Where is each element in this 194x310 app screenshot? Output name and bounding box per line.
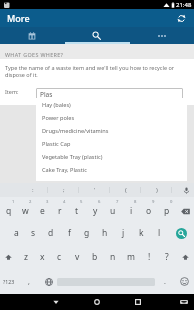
- button[interactable]: Home: [89, 294, 105, 310]
- staticText: r: [58, 205, 62, 217]
- staticText: o: [146, 205, 152, 217]
- button[interactable]: m: [122, 245, 140, 269]
- staticText: ': [94, 186, 96, 194]
- staticText: 3: [46, 199, 49, 205]
- staticText: s: [31, 227, 36, 239]
- staticText: ;: [63, 186, 65, 194]
- button[interactable]: k: [132, 221, 150, 245]
- staticText: z: [24, 251, 28, 263]
- button[interactable]: 9: [140, 197, 158, 221]
- staticText: 4: [63, 199, 66, 205]
- button[interactable]: Hay (bales): [36, 98, 187, 111]
- button[interactable]: Calendar: [0, 27, 64, 44]
- staticText: Plas: [40, 90, 53, 99]
- button[interactable]: c: [51, 245, 68, 269]
- button[interactable]: Search: [168, 221, 194, 245]
- staticText: 6: [98, 199, 101, 205]
- button[interactable]: Power poles: [36, 111, 187, 124]
- button[interactable]: 6: [86, 197, 104, 221]
- staticText: 7: [116, 199, 119, 205]
- staticText: 21:48: [176, 1, 192, 9]
- button[interactable]: g: [78, 221, 96, 245]
- button[interactable]: Change language: [40, 269, 57, 294]
- button[interactable]: d: [42, 221, 60, 245]
- button[interactable]: 0: [158, 197, 176, 221]
- button[interactable]: h: [96, 221, 114, 245]
- button[interactable]: f: [60, 221, 78, 245]
- button[interactable]: 5: [68, 197, 86, 221]
- button[interactable]: Back: [48, 294, 64, 310]
- button[interactable]: .: [155, 269, 175, 294]
- staticText: x: [40, 251, 45, 263]
- staticText: Cake Tray, Plastic: [42, 166, 87, 174]
- button[interactable]: ): [141, 183, 172, 197]
- button[interactable]: Recent apps: [130, 294, 146, 310]
- button[interactable]: Refresh: [173, 10, 189, 26]
- staticText: 1: [12, 199, 15, 205]
- staticText: l: [158, 227, 161, 239]
- button[interactable]: 8: [122, 197, 140, 221]
- button[interactable]: ?123: [0, 269, 18, 294]
- staticText: Type the name of a waste item and we'll …: [5, 64, 175, 78]
- button[interactable]: Drugs/medicine/vitamins: [36, 124, 187, 137]
- button[interactable]: !: [140, 245, 158, 269]
- staticText: Vegetable Tray (plastic): [42, 153, 103, 161]
- button[interactable]: Vegetable Tray (plastic): [36, 150, 187, 163]
- button[interactable]: x: [34, 245, 51, 269]
- staticText: m: [127, 251, 135, 263]
- button[interactable]: Cake Tray, Plastic: [36, 163, 187, 176]
- staticText: v: [75, 251, 80, 263]
- button[interactable]: Search: [64, 27, 129, 44]
- staticText: p: [164, 205, 170, 217]
- staticText: w: [22, 205, 29, 217]
- staticText: More: [7, 12, 30, 24]
- button[interactable]: 7: [104, 197, 122, 221]
- button[interactable]: Emoji: [175, 269, 194, 294]
- staticText: 5: [80, 199, 83, 205]
- button[interactable]: ;: [48, 183, 79, 197]
- button[interactable]: a: [8, 221, 25, 245]
- staticText: t: [75, 205, 79, 217]
- button[interactable]: ': [79, 183, 110, 197]
- button[interactable]: :: [17, 183, 48, 197]
- button[interactable]: s: [25, 221, 42, 245]
- button[interactable]: Plastic Cap: [36, 137, 187, 150]
- staticText: Power poles: [42, 114, 75, 122]
- button[interactable]: ?: [158, 245, 176, 269]
- staticText: ,: [28, 277, 30, 287]
- staticText: ?123: [3, 278, 15, 285]
- button[interactable]: v: [68, 245, 86, 269]
- button[interactable]: Switch keyboard: [177, 295, 191, 309]
- button[interactable]: 2: [17, 197, 34, 221]
- staticText: b: [92, 251, 98, 263]
- staticText: a: [14, 227, 19, 239]
- button[interactable]: 1: [0, 197, 17, 221]
- button[interactable]: z: [17, 245, 34, 269]
- button[interactable]: 3: [34, 197, 51, 221]
- staticText: k: [139, 227, 144, 239]
- staticText: WHAT GOES WHERE?: [5, 51, 64, 58]
- staticText: Item:: [5, 88, 19, 95]
- staticText: !: [148, 251, 151, 263]
- button[interactable]: ,: [18, 269, 40, 294]
- staticText: .: [164, 277, 166, 287]
- button[interactable]: Plas: [36, 88, 183, 101]
- staticText: 9: [152, 199, 155, 205]
- button[interactable]: n: [104, 245, 122, 269]
- button[interactable]: Voice input: [181, 185, 192, 196]
- button[interactable]: 4: [51, 197, 68, 221]
- button[interactable]: j: [114, 221, 132, 245]
- button[interactable]: (: [110, 183, 141, 197]
- button[interactable]: More: [129, 27, 194, 44]
- button[interactable]: Shift: [176, 245, 194, 269]
- button[interactable]: b: [86, 245, 104, 269]
- button[interactable]: l: [150, 221, 168, 245]
- staticText: Plastic Cap: [42, 140, 71, 148]
- staticText: q: [6, 205, 12, 217]
- staticText: j: [122, 227, 125, 239]
- button[interactable]: Shift: [0, 245, 17, 269]
- staticText: Drugs/medicine/vitamins: [42, 127, 109, 135]
- staticText: u: [110, 205, 116, 217]
- button[interactable]: Backspace: [176, 197, 194, 221]
